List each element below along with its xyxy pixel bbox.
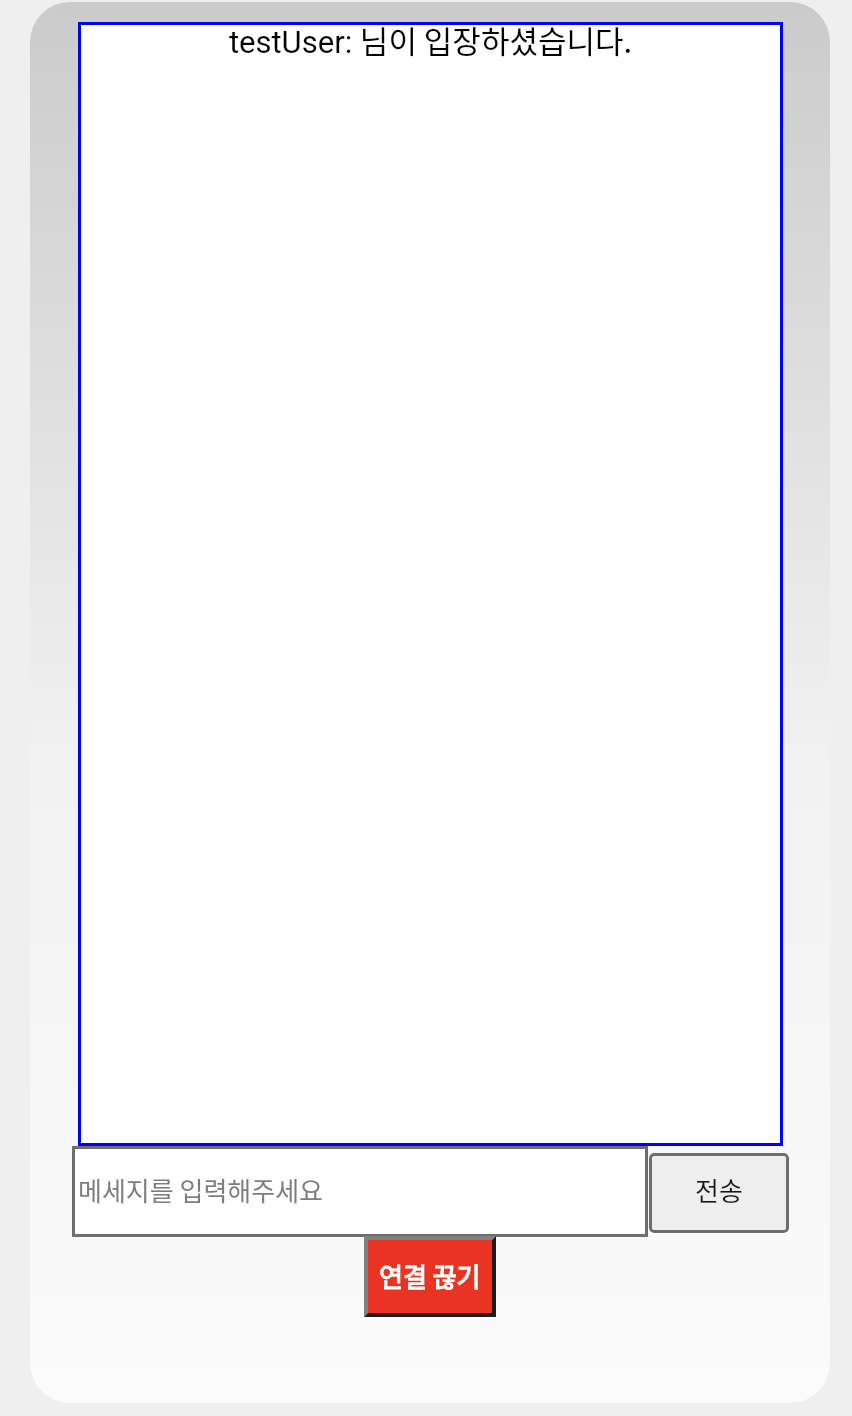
staticText: 메세지를 입력해주세요	[78, 1171, 324, 1209]
button[interactable]: 전송	[649, 1153, 789, 1233]
button[interactable]: 연결 끊기	[364, 1236, 496, 1317]
staticText: testUser: 님이 입장하셨습니다.	[78, 22, 783, 62]
staticText: 연결 끊기	[379, 1257, 481, 1295]
button[interactable]: 메세지를 입력해주세요	[72, 1146, 648, 1237]
staticText: 전송	[695, 1171, 743, 1209]
